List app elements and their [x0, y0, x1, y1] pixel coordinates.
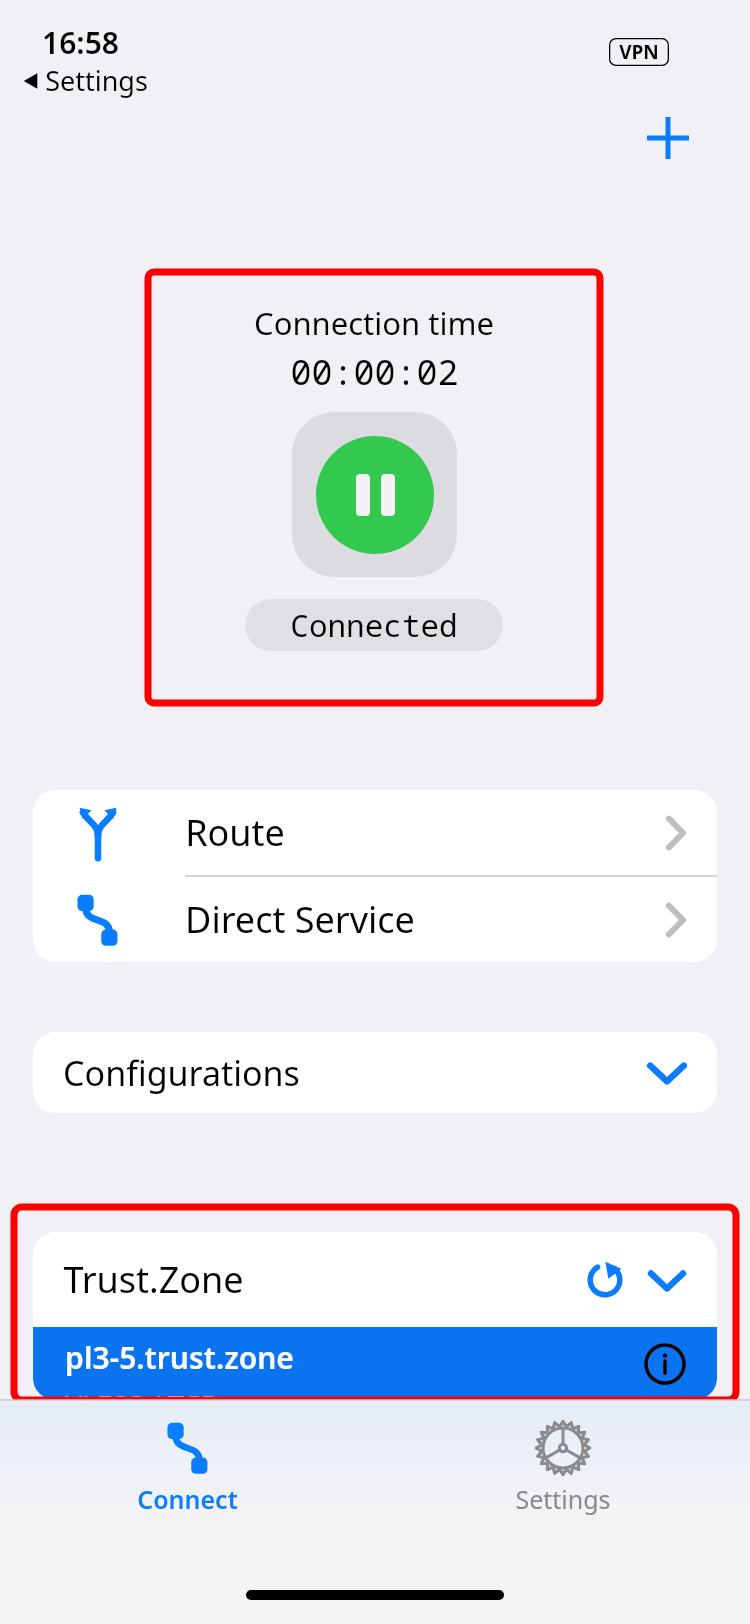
button[interactable]: Configurations	[33, 1032, 717, 1113]
button[interactable]: Info	[641, 1340, 689, 1388]
staticText: Connected	[290, 604, 458, 646]
button[interactable]: Route	[33, 790, 717, 875]
staticText: Trust.Zone	[63, 1255, 244, 1304]
button[interactable]: Direct Service	[33, 877, 717, 962]
button[interactable]: Refresh	[579, 1254, 631, 1306]
staticText: Configurations	[63, 1050, 300, 1096]
button[interactable]: Add	[628, 98, 708, 178]
staticText: VLESS / TCP	[65, 1386, 218, 1400]
button[interactable]: Trust.Zone	[33, 1232, 717, 1327]
staticText: Settings	[45, 62, 148, 99]
staticText: VPN	[619, 39, 659, 65]
button[interactable]: Expand	[643, 1256, 691, 1304]
staticText: Connect	[137, 1482, 238, 1516]
staticText: Connection time	[254, 302, 494, 344]
staticText: pl3-5.trust.zone	[65, 1337, 294, 1378]
staticText: Direct Service	[185, 895, 415, 944]
staticText: Settings	[515, 1482, 611, 1516]
staticText: 00:00:02	[290, 348, 459, 396]
button[interactable]: pl3-5.trust.zone	[33, 1327, 717, 1400]
button[interactable]: Settings	[22, 62, 148, 99]
staticText: 16:58	[42, 22, 119, 63]
staticText: Route	[185, 808, 285, 857]
button[interactable]: Disconnect	[292, 412, 457, 577]
button[interactable]: Settings	[375, 1400, 750, 1516]
button[interactable]: Connect	[0, 1400, 375, 1516]
